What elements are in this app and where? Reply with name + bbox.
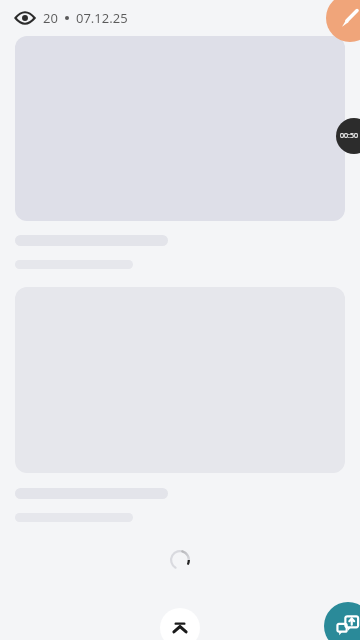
- button[interactable]: Scroll to top: [160, 608, 200, 640]
- button[interactable]: Send message: [324, 602, 360, 640]
- button[interactable]: [15, 36, 345, 221]
- button[interactable]: Draw: [326, 0, 360, 42]
- button[interactable]: Views: [14, 7, 36, 29]
- staticText: 07.12.25: [76, 9, 128, 27]
- button[interactable]: 00:50: [336, 118, 360, 154]
- staticText: 20: [43, 9, 58, 27]
- staticText: 00:50: [340, 131, 358, 141]
